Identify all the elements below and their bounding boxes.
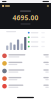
button[interactable]: [0, 75, 51, 82]
button[interactable]: Category: [28, 31, 45, 34]
staticText: 4695.00: [12, 13, 38, 22]
button[interactable]: [0, 67, 51, 75]
button[interactable]: Category: [28, 45, 45, 48]
button[interactable]: [0, 82, 51, 90]
button[interactable]: [0, 60, 51, 67]
button[interactable]: Category: [28, 36, 45, 39]
button[interactable]: [2, 5, 10, 7]
button[interactable]: Category: [28, 40, 45, 44]
button[interactable]: [0, 52, 51, 60]
button[interactable]: Notifications: [47, 5, 49, 7]
